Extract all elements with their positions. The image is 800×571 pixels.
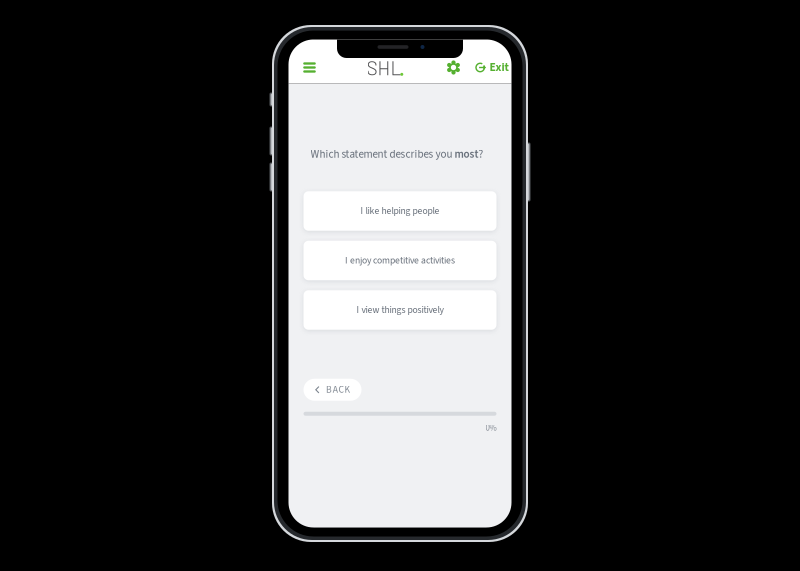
staticText: Which statement describes you most? bbox=[310, 146, 483, 162]
button[interactable]: I like helping people bbox=[303, 191, 496, 231]
staticText: Exit bbox=[489, 59, 508, 76]
staticText: I like helping people bbox=[360, 204, 439, 218]
button[interactable]: I view things positively bbox=[303, 290, 496, 330]
staticText: SHL bbox=[366, 56, 401, 79]
staticText: I enjoy competitive activities bbox=[345, 254, 455, 267]
button[interactable]: Settings bbox=[440, 52, 466, 82]
button[interactable]: Exit bbox=[475, 52, 508, 82]
button[interactable]: I enjoy competitive activities bbox=[303, 241, 496, 280]
staticText: BACK bbox=[326, 383, 350, 397]
staticText: 0% bbox=[485, 422, 496, 434]
button[interactable]: BACK bbox=[303, 379, 361, 401]
button[interactable]: Menu bbox=[294, 52, 324, 82]
staticText: I view things positively bbox=[356, 303, 443, 317]
